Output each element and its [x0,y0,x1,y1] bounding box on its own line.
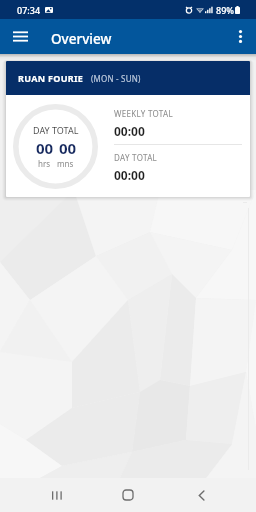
button[interactable]: More options [221,19,256,54]
button[interactable]: RUAN FOURIE [6,61,250,95]
staticText: WEEKLY TOTAL [114,108,173,119]
staticText: Overview [51,30,112,48]
staticText: 00 [59,138,77,158]
staticText: hrs [38,158,51,169]
staticText: 89% [216,4,234,16]
staticText: 00:00 [114,123,145,139]
staticText: 00:00 [114,167,145,183]
button[interactable]: Back [184,478,218,512]
button[interactable]: Open navigation menu [3,19,38,54]
button[interactable]: Home [111,478,145,512]
staticText: (MON - SUN) [91,73,141,84]
staticText: 00 [36,138,54,158]
button[interactable]: Recent apps [39,478,73,512]
staticText: RUAN FOURIE [18,72,84,84]
staticText: DAY TOTAL [114,152,158,163]
staticText: 07:34 [17,4,41,16]
staticText: mns [57,158,74,169]
staticText: DAY TOTAL [33,124,79,136]
